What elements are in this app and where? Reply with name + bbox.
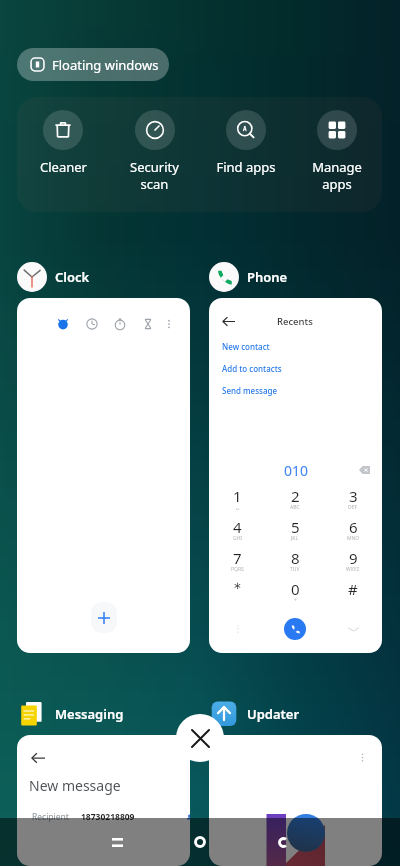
- button[interactable]: 3: [324, 485, 382, 516]
- button[interactable]: 8: [266, 547, 324, 578]
- staticText: Clock: [55, 268, 90, 286]
- staticText: +: [294, 597, 297, 604]
- staticText: New message: [29, 776, 121, 795]
- staticText: Messaging: [55, 705, 124, 723]
- button[interactable]: 9: [324, 547, 382, 578]
- button[interactable]: Hide keypad: [324, 618, 382, 640]
- staticText: PQRS: [231, 566, 244, 573]
- staticText: Security scan: [130, 158, 179, 193]
- button[interactable]: 2: [266, 485, 324, 516]
- button[interactable]: Add alarm: [91, 602, 117, 633]
- button[interactable]: Close all apps: [176, 714, 224, 762]
- staticText: 6: [349, 517, 358, 537]
- button[interactable]: #: [324, 578, 382, 609]
- staticText: Add to contacts: [222, 363, 282, 374]
- button[interactable]: Floating windows: [17, 48, 169, 81]
- staticText: JKL: [291, 535, 299, 542]
- staticText: ␣: [236, 504, 240, 510]
- staticText: Manage apps: [312, 158, 362, 193]
- button[interactable]: Recents: [97, 818, 137, 866]
- staticText: Phone: [247, 268, 288, 286]
- staticText: ＊: [230, 579, 245, 598]
- staticText: Floating windows: [52, 56, 159, 74]
- button[interactable]: Manage apps: [291, 97, 382, 212]
- staticText: 010: [284, 461, 309, 480]
- staticText: Recipient: [32, 811, 69, 823]
- staticText: 1: [233, 486, 242, 506]
- staticText: Cleaner: [40, 158, 87, 176]
- button[interactable]: New message: [17, 735, 190, 866]
- staticText: #: [348, 579, 358, 599]
- staticText: 7: [233, 548, 242, 568]
- staticText: Send message: [222, 385, 278, 396]
- staticText: WXYZ: [346, 566, 360, 573]
- staticText: TUV: [290, 566, 300, 573]
- button[interactable]: Add alarm: [17, 298, 190, 653]
- staticText: 3: [349, 486, 358, 506]
- button[interactable]: Cleaner: [17, 97, 109, 212]
- button[interactable]: Security scan: [109, 97, 200, 212]
- staticText: 5: [291, 517, 300, 537]
- button[interactable]: [209, 735, 382, 866]
- staticText: 2: [291, 486, 300, 506]
- staticText: ABC: [290, 504, 300, 511]
- staticText: GHI: [233, 535, 243, 542]
- staticText: 9: [349, 548, 358, 568]
- staticText: DEF: [348, 504, 358, 511]
- button[interactable]: ＊: [209, 578, 266, 609]
- button[interactable]: Find apps: [200, 97, 291, 212]
- staticText: Find apps: [216, 158, 276, 176]
- button[interactable]: Back: [263, 818, 303, 866]
- button[interactable]: 0: [266, 578, 324, 609]
- button[interactable]: 5: [266, 516, 324, 547]
- button[interactable]: 4: [209, 516, 266, 547]
- staticText: 8: [291, 548, 300, 568]
- staticText: 0: [291, 579, 300, 599]
- staticText: New contact: [222, 341, 270, 352]
- staticText: 18730218809: [81, 811, 135, 823]
- button[interactable]: 6: [324, 516, 382, 547]
- button[interactable]: 1: [209, 485, 266, 516]
- button[interactable]: Home: [180, 818, 220, 866]
- button[interactable]: Call: [284, 618, 306, 640]
- staticText: Recents: [277, 315, 313, 328]
- staticText: 4: [233, 517, 242, 537]
- button[interactable]: Recents: [209, 298, 382, 653]
- staticText: MNO: [347, 535, 360, 542]
- button[interactable]: 7: [209, 547, 266, 578]
- staticText: Updater: [247, 705, 300, 723]
